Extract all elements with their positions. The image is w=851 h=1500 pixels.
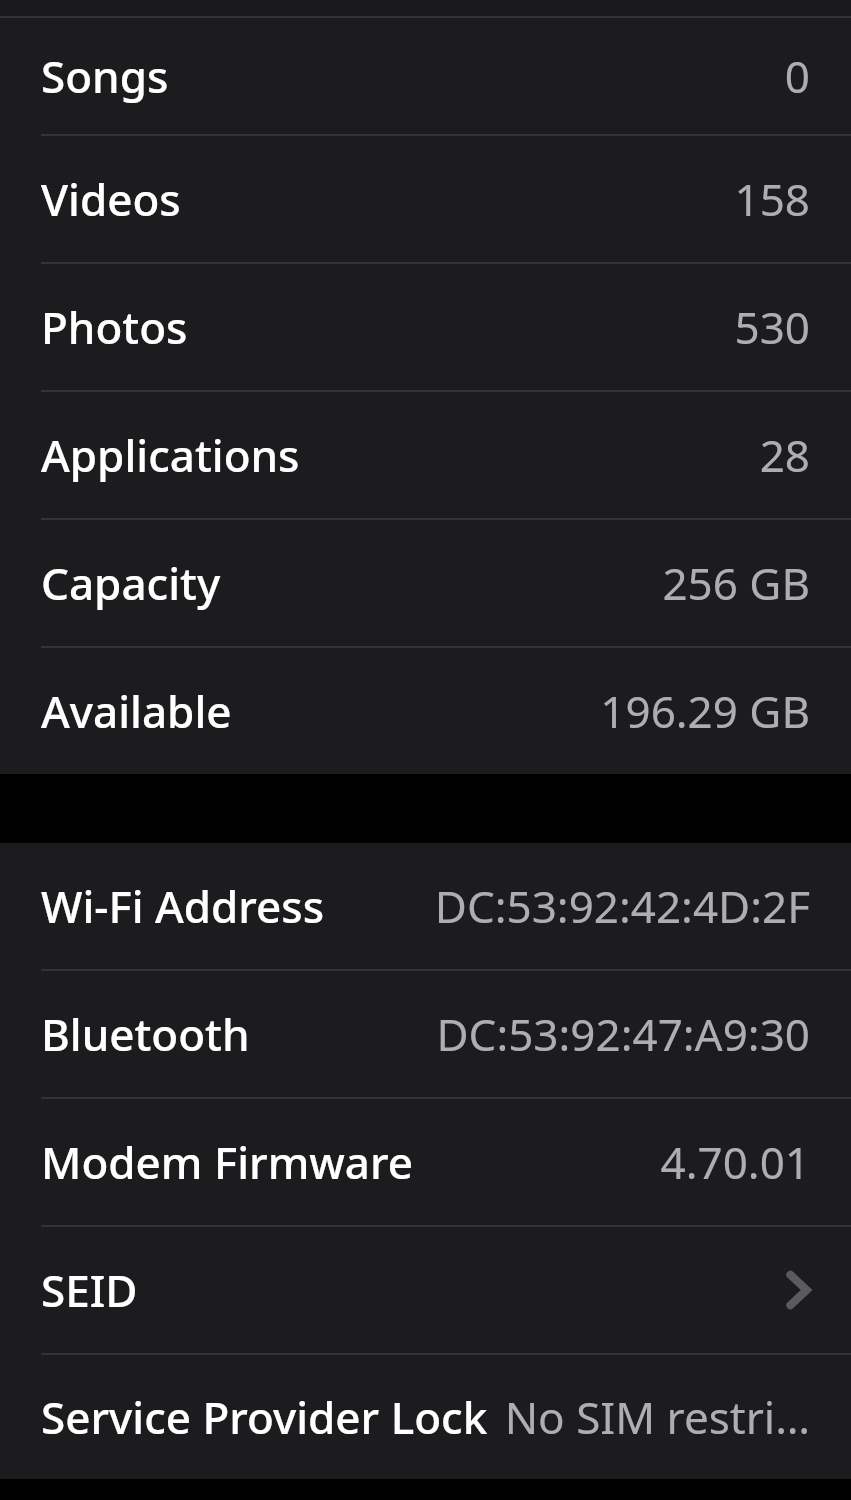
- staticText: DC:53:92:42:4D:2F: [434, 876, 810, 936]
- staticText: 28: [759, 425, 810, 485]
- staticText: 158: [734, 169, 810, 229]
- staticText: 0: [784, 46, 810, 106]
- button[interactable]: Wi-Fi Address: [0, 843, 851, 969]
- staticText: SEID: [41, 1260, 138, 1320]
- button[interactable]: Applications: [0, 392, 851, 518]
- staticText: 530: [734, 297, 810, 357]
- staticText: Applications: [41, 425, 300, 485]
- button[interactable]: Service Provider Lock: [0, 1355, 851, 1479]
- staticText: Capacity: [41, 553, 221, 613]
- staticText: Songs: [41, 46, 169, 106]
- button[interactable]: Capacity: [0, 520, 851, 646]
- staticText: Videos: [41, 169, 181, 229]
- staticText: 4.70.01: [660, 1132, 810, 1192]
- button[interactable]: Bluetooth: [0, 971, 851, 1097]
- button[interactable]: Available: [0, 648, 851, 774]
- button[interactable]: Videos: [0, 136, 851, 262]
- staticText: Available: [41, 681, 232, 741]
- button[interactable]: Songs: [0, 18, 851, 134]
- staticText: No SIM restri…: [504, 1387, 810, 1447]
- button[interactable]: Photos: [0, 264, 851, 390]
- staticText: Modem Firmware: [41, 1132, 413, 1192]
- staticText: Wi-Fi Address: [41, 876, 325, 936]
- staticText: 196.29 GB: [600, 681, 810, 741]
- staticText: Bluetooth: [41, 1004, 250, 1064]
- staticText: 256 GB: [662, 553, 810, 613]
- button[interactable]: SEID: [0, 1227, 851, 1353]
- staticText: Photos: [41, 297, 188, 357]
- staticText: Service Provider Lock: [41, 1387, 488, 1447]
- button[interactable]: Modem Firmware: [0, 1099, 851, 1225]
- staticText: DC:53:92:47:A9:30: [436, 1004, 810, 1064]
- other: SEID details: [786, 1270, 810, 1310]
